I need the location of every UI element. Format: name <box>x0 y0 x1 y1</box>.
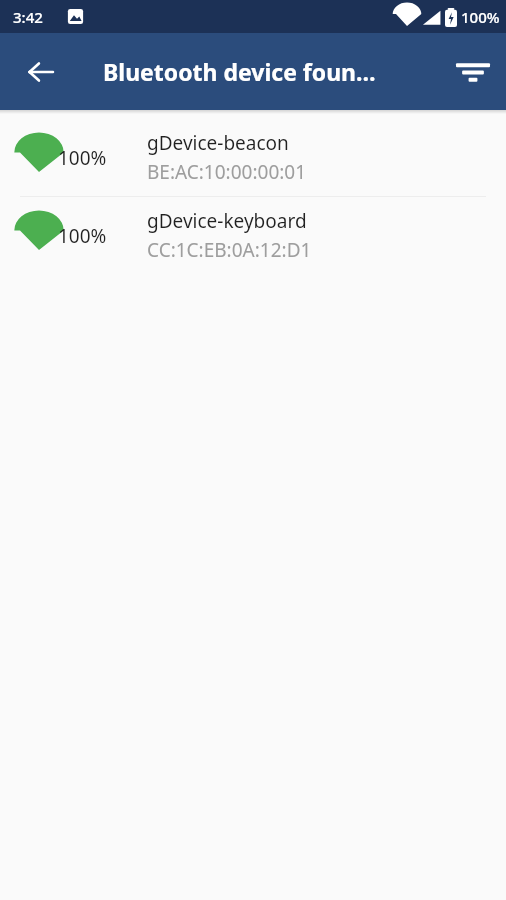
button[interactable]: Filter <box>450 49 496 95</box>
staticText: 100% <box>58 223 107 249</box>
button[interactable]: 100% <box>0 119 506 196</box>
staticText: BE:AC:10:00:00:01 <box>147 159 307 185</box>
staticText: 100% <box>461 7 500 27</box>
staticText: CC:1C:EB:0A:12:D1 <box>147 237 312 263</box>
staticText: gDevice-keyboard <box>147 208 307 234</box>
staticText: 3:42 <box>13 7 43 27</box>
staticText: 100% <box>58 145 107 171</box>
staticText: gDevice-beacon <box>147 130 289 156</box>
staticText: Bluetooth device foun… <box>103 56 376 87</box>
button[interactable]: 100% <box>0 197 506 274</box>
button[interactable]: Back <box>18 49 64 95</box>
